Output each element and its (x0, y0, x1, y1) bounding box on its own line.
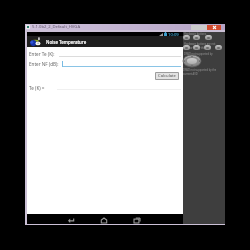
button[interactable]: Home (99, 215, 109, 225)
button[interactable]: Close (207, 25, 221, 30)
button[interactable]: Emulator key (215, 45, 222, 50)
button[interactable]: Back (66, 215, 76, 225)
button[interactable]: Emulator key (205, 35, 212, 40)
button[interactable]: Emulator key (193, 35, 200, 40)
button[interactable]: Emulator key (193, 45, 200, 50)
staticText: Noise Temperature (46, 39, 87, 45)
staticText: Hardware buttons (184, 32, 207, 36)
staticText: DPAD not supported by (184, 52, 213, 56)
staticText: 5.1.0b2_2_Default_HVGA (32, 24, 81, 30)
button[interactable]: Emulator key (204, 45, 211, 50)
staticText: Enter NF (dB): (29, 61, 59, 67)
button[interactable]: D-pad (183, 55, 201, 67)
button[interactable]: Emulator key (183, 35, 190, 40)
staticText: Te (K) = (29, 85, 45, 91)
staticText: DPAD not supported by the current AVD (183, 68, 225, 76)
staticText: Enter Te (K): (29, 51, 55, 57)
staticText: Calculate (158, 73, 176, 79)
staticText: Hardware buttons are not supported by th… (184, 42, 226, 50)
button[interactable]: Calculate (156, 73, 178, 79)
button[interactable]: Emulator key (183, 45, 190, 50)
button[interactable]: Recents (132, 215, 142, 225)
staticText: 10:09 (168, 32, 179, 36)
